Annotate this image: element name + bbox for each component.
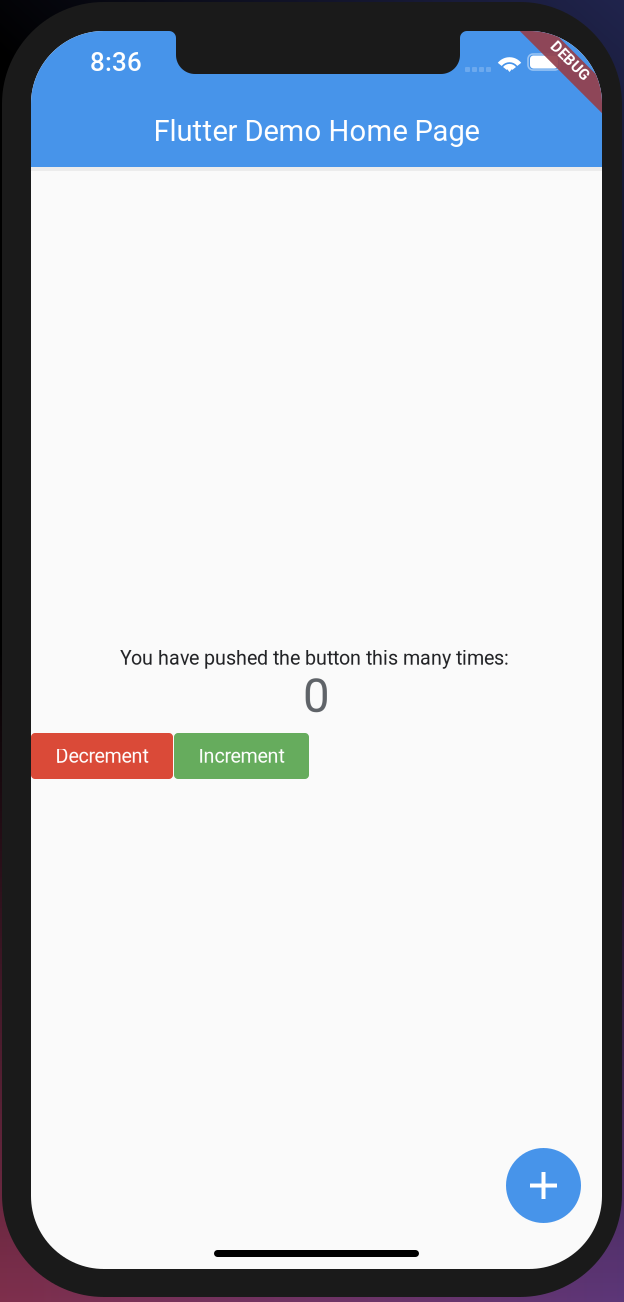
- staticText: 0: [303, 668, 330, 724]
- staticText: You have pushed the button this many tim…: [120, 646, 509, 669]
- button[interactable]: Decrement: [31, 733, 173, 779]
- button[interactable]: Increment: [506, 1148, 581, 1223]
- button[interactable]: Increment: [174, 733, 309, 779]
- staticText: DEBUG: [546, 52, 594, 69]
- staticText: Decrement: [55, 744, 148, 767]
- staticText: Increment: [198, 744, 284, 767]
- staticText: 8:36: [90, 47, 142, 77]
- staticText: Flutter Demo Home Page: [153, 114, 479, 148]
